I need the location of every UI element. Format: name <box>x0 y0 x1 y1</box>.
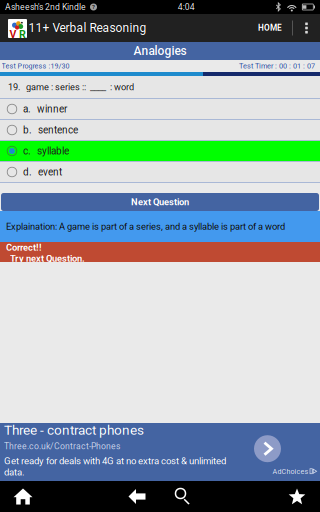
button[interactable]: HOME <box>248 14 292 42</box>
staticText: c. syllable <box>23 145 69 157</box>
staticText: 4:04 <box>178 2 195 12</box>
staticText: a. winner <box>23 103 67 115</box>
staticText: AdChoices <box>272 467 308 476</box>
staticText: b. sentence <box>23 124 78 136</box>
staticText: R <box>19 28 26 40</box>
button[interactable]: Back <box>114 481 160 512</box>
staticText: Get ready for deals with 4G at no extra … <box>4 455 226 478</box>
button[interactable]: Next Question <box>0 193 320 211</box>
button[interactable]: Home <box>0 481 46 512</box>
staticText: Try next Question. <box>10 253 85 264</box>
button[interactable]: Favorites <box>274 481 320 512</box>
button[interactable]: a. winner <box>0 99 320 119</box>
staticText: Test Progress :19/30 <box>1 62 69 70</box>
button[interactable]: c. syllable <box>0 141 320 161</box>
staticText: HOME <box>258 23 282 33</box>
button[interactable]: d. event <box>0 162 320 182</box>
button[interactable]: More options <box>293 14 320 42</box>
staticText: ? <box>92 3 95 10</box>
staticText: Analogies <box>133 44 186 58</box>
staticText: Asheesh's 2nd Kindle <box>5 2 86 12</box>
staticText: 11+ Verbal Reasoning <box>28 21 146 35</box>
button[interactable]: b. sentence <box>0 120 320 140</box>
staticText: Test Timer : 00 : 01 : 07 <box>239 62 315 70</box>
staticText: Three.co.uk/Contract-Phones <box>4 441 120 451</box>
staticText: Next Question <box>131 196 189 207</box>
staticText: 19. game : series :: ____ : word <box>8 82 134 92</box>
staticText: d. event <box>23 166 62 178</box>
button[interactable]: Three - contract phones <box>0 423 320 481</box>
staticText: Explaination: A game is part of a series… <box>6 221 285 232</box>
staticText: Three - contract phones <box>4 422 144 438</box>
staticText: V <box>9 28 16 40</box>
staticText: Correct!! <box>6 242 42 253</box>
button[interactable]: V <box>0 14 146 42</box>
button[interactable]: Search <box>160 481 206 512</box>
